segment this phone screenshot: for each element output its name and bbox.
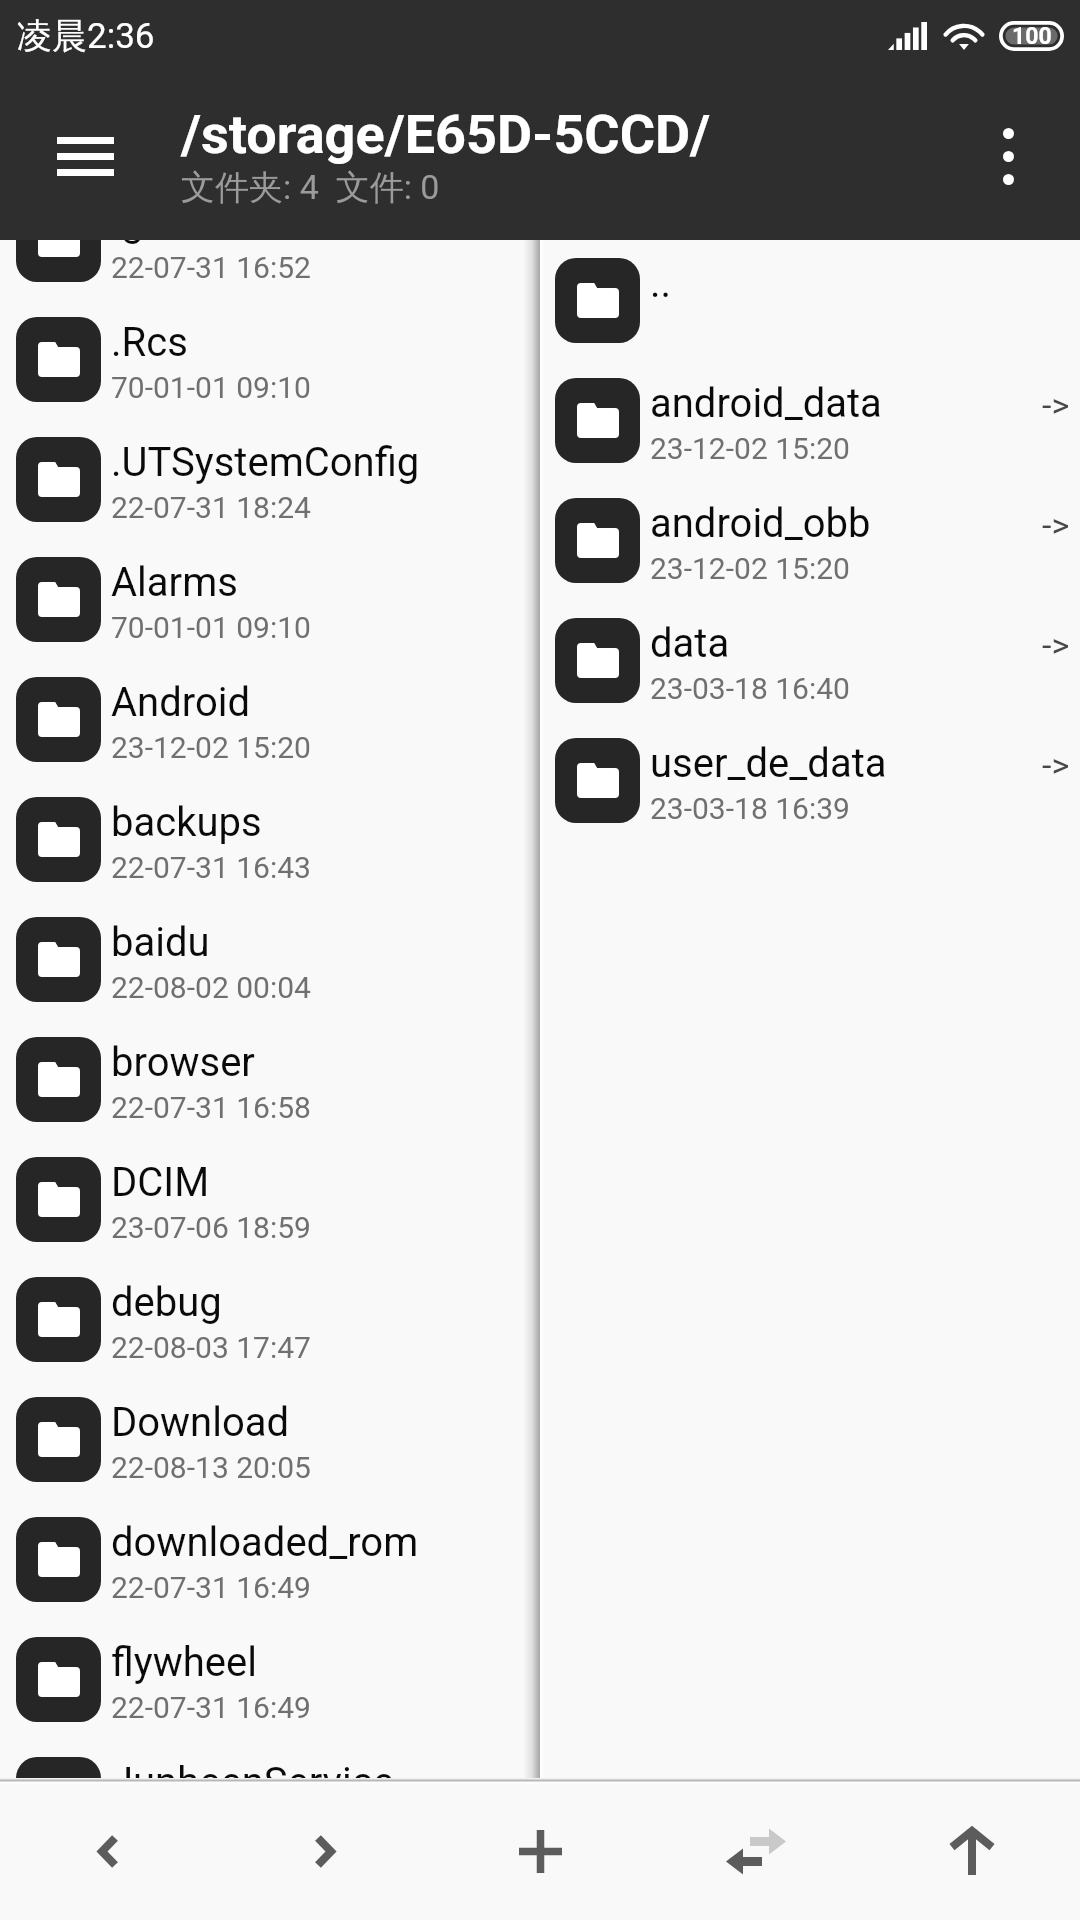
button[interactable]: More options [962,110,1054,202]
staticText: 23-12-02 15:20 [650,551,850,586]
staticText: 22-07-31 16:58 [111,1090,311,1125]
staticText: 22-07-31 16:49 [111,1690,311,1725]
button[interactable]: android_obb [540,480,1080,600]
button[interactable]: baidu [0,899,540,1019]
button[interactable]: Up one level [864,1782,1080,1920]
staticText: 22-08-02 00:04 [111,970,311,1005]
staticText: /storage/E65D-5CCD/ [181,103,711,166]
button[interactable]: debug [0,1259,540,1379]
staticText: 22-07-31 16:52 [111,250,311,285]
staticText: JunheenService [111,1759,394,1782]
staticText: browser [111,1039,255,1086]
staticText: 22-07-31 16:49 [111,1570,311,1605]
button[interactable]: .. [540,240,1080,360]
button[interactable]: JunheenService [0,1739,540,1782]
staticText: 23-07-06 18:59 [111,1210,311,1245]
staticText: 文件夹: 4 文件: 0 [181,166,440,209]
button[interactable]: backups [0,779,540,899]
button[interactable]: Alarms [0,539,540,659]
staticText: -> [1042,385,1070,425]
staticText: 22-07-31 16:43 [111,850,311,885]
staticText: Download [111,1399,290,1446]
button[interactable]: data [540,600,1080,720]
button[interactable]: Navigation menu [33,104,137,208]
staticText: baidu [111,919,210,966]
button[interactable]: .Rcs [0,299,540,419]
staticText: 23-12-02 15:20 [111,730,311,765]
button[interactable]: Forward [216,1782,432,1920]
button[interactable]: browser [0,1019,540,1139]
staticText: backups [111,799,262,846]
button[interactable]: .globalTrust [0,240,540,299]
button[interactable]: downloaded_rom [0,1499,540,1619]
staticText: flywheel [111,1639,257,1686]
staticText: -> [1042,625,1070,665]
button[interactable]: Download [0,1379,540,1499]
staticText: -> [1042,745,1070,785]
staticText: debug [111,1279,222,1326]
staticText: android_data [650,380,882,427]
button[interactable]: DCIM [0,1139,540,1259]
staticText: .globalTrust [111,240,323,246]
button[interactable]: .UTSystemConfig [0,419,540,539]
button[interactable]: android_data [540,360,1080,480]
button[interactable]: Android [0,659,540,779]
staticText: -> [1042,505,1070,545]
staticText: user_de_data [650,740,887,787]
staticText: Alarms [111,559,238,606]
button[interactable]: flywheel [0,1619,540,1739]
staticText: 70-01-01 09:10 [111,610,311,645]
staticText: data [650,620,730,667]
staticText: 22-07-31 18:24 [111,490,311,525]
button[interactable]: Back [0,1782,216,1920]
button[interactable]: Swap panes [648,1782,864,1920]
staticText: 22-08-03 17:47 [111,1330,311,1365]
staticText: 22-08-13 20:05 [111,1450,311,1485]
button[interactable]: New folder [432,1782,648,1920]
staticText: 23-03-18 16:39 [650,791,850,826]
staticText: DCIM [111,1159,210,1206]
staticText: .. [650,260,672,307]
staticText: 100 [1012,23,1052,50]
staticText: downloaded_rom [111,1519,419,1566]
staticText: 23-03-18 16:40 [650,671,850,706]
staticText: .UTSystemConfig [111,439,420,486]
staticText: 23-12-02 15:20 [650,431,850,466]
staticText: .Rcs [111,319,188,366]
staticText: android_obb [650,500,871,547]
staticText: 70-01-01 09:10 [111,370,311,405]
staticText: 凌晨2:36 [17,14,155,58]
button[interactable]: user_de_data [540,720,1080,840]
staticText: Android [111,679,251,726]
